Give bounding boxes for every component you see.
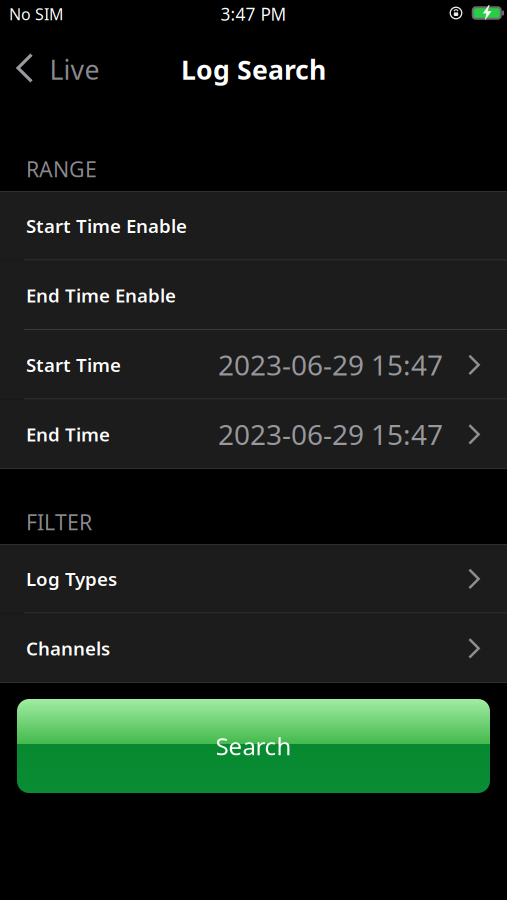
staticText: No SIM	[9, 3, 64, 25]
button[interactable]: Live	[0, 46, 99, 93]
button[interactable]: End Time Enable	[0, 260, 507, 330]
staticText: End Time	[26, 422, 110, 447]
button[interactable]: Log Types	[0, 544, 507, 613]
button[interactable]: Search	[0, 683, 507, 793]
staticText: 2023-06-29 15:47	[218, 346, 443, 383]
button[interactable]: Channels	[0, 613, 507, 683]
staticText: 2023-06-29 15:47	[218, 416, 443, 453]
staticText: End Time Enable	[26, 283, 176, 308]
staticText: FILTER	[26, 508, 92, 536]
staticText: Start Time	[26, 352, 121, 377]
staticText: Log Search	[181, 52, 326, 87]
staticText: Live	[49, 52, 99, 87]
staticText: RANGE	[26, 155, 97, 183]
button[interactable]: End Time	[0, 399, 507, 469]
staticText: Start Time Enable	[26, 213, 187, 238]
staticText: Search	[215, 730, 291, 762]
staticText: Log Types	[26, 566, 117, 591]
button[interactable]: Start Time	[0, 330, 507, 399]
staticText: 3:47 PM	[220, 2, 286, 25]
staticText: Channels	[26, 636, 110, 661]
button[interactable]: Start Time Enable	[0, 191, 507, 260]
